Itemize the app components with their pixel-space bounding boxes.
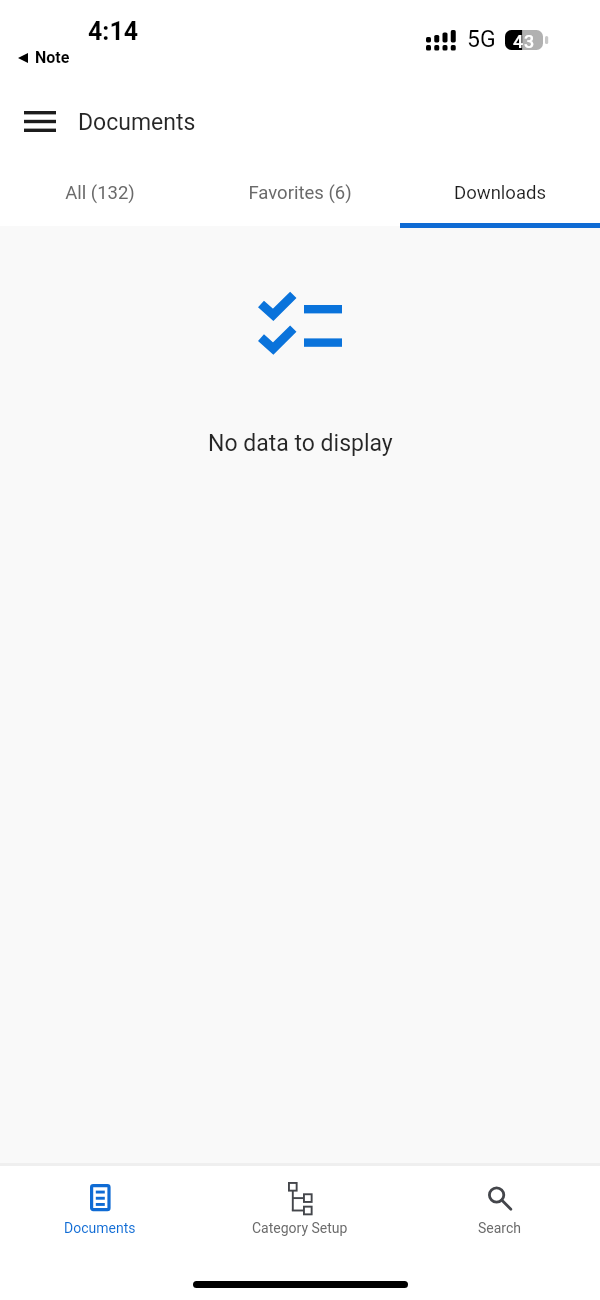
button[interactable]: Open navigation menu [12, 97, 67, 145]
button[interactable]: Search [400, 1166, 600, 1246]
button[interactable]: Category Setup [200, 1166, 400, 1246]
button[interactable]: Documents [0, 1166, 200, 1246]
staticText: 5G [467, 26, 496, 53]
staticText: Documents [64, 1220, 136, 1236]
button[interactable]: Back to Note [18, 48, 70, 67]
staticText: Documents [78, 109, 196, 136]
staticText: No data to display [208, 430, 393, 457]
staticText: 4:14 [88, 17, 139, 46]
staticText: Note [35, 48, 70, 67]
staticText: All (132) [65, 182, 135, 204]
staticText: Downloads [454, 182, 546, 204]
button[interactable]: Downloads [400, 166, 600, 228]
button[interactable]: All (132) [0, 166, 200, 228]
staticText: Search [478, 1220, 522, 1236]
staticText: Favorites (6) [248, 182, 352, 204]
staticText: 43 [513, 31, 536, 51]
staticText: Category Setup [252, 1220, 348, 1236]
button[interactable]: Favorites (6) [200, 166, 400, 228]
